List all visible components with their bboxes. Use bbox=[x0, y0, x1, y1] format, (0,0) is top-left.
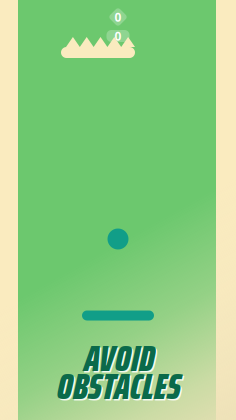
staticText: 0 bbox=[114, 28, 121, 44]
staticText: 0 bbox=[114, 9, 121, 25]
staticText: AVOID bbox=[84, 329, 154, 387]
staticText: AVOID bbox=[86, 330, 156, 389]
staticText: OBSTACLES bbox=[57, 357, 181, 415]
staticText: OBSTACLES bbox=[59, 358, 183, 417]
